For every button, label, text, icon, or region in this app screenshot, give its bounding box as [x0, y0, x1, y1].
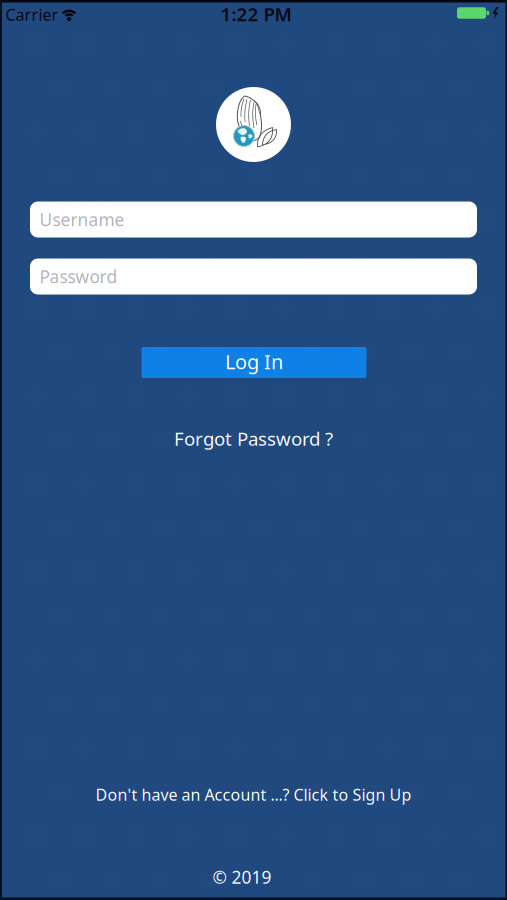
staticText: Log In: [225, 348, 283, 375]
staticText: Password: [39, 265, 117, 288]
staticText: 1:22 PM: [220, 2, 291, 26]
button[interactable]: Log In: [141, 347, 366, 378]
staticText: Username: [39, 208, 124, 231]
staticText: Carrier: [5, 4, 58, 25]
button[interactable]: Forgot Password ?: [174, 426, 333, 451]
staticText: © 2019: [212, 865, 271, 888]
button[interactable]: Username: [30, 201, 477, 237]
staticText: Don't have an Account ...? Click to Sign…: [95, 784, 411, 805]
staticText: Forgot Password ?: [174, 426, 333, 451]
button[interactable]: Password: [30, 258, 477, 294]
button[interactable]: Don't have an Account ...? Click to Sign…: [95, 784, 411, 805]
